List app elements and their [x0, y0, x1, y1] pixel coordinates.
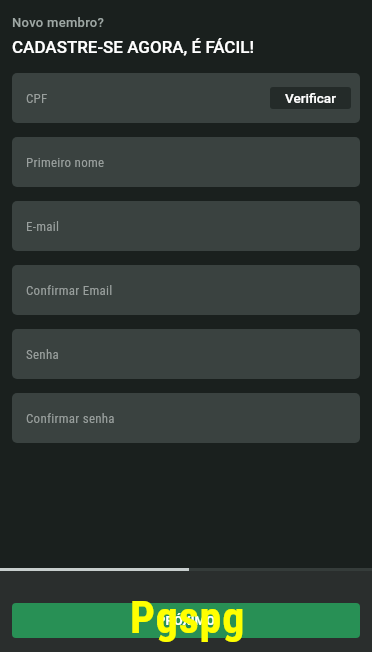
button[interactable]: Senha	[12, 329, 360, 379]
button[interactable]: CPF	[12, 73, 360, 123]
staticText: Pgspg	[130, 592, 246, 644]
staticText: Novo membro?	[12, 15, 105, 30]
staticText: Confirmar Email	[26, 283, 113, 298]
staticText: Verificar	[285, 90, 336, 106]
button[interactable]: Confirmar senha	[12, 393, 360, 443]
button[interactable]: Primeiro nome	[12, 137, 360, 187]
button[interactable]: Confirmar Email	[12, 265, 360, 315]
staticText: Confirmar senha	[26, 411, 115, 426]
button[interactable]: PRÓXIMO	[12, 603, 360, 638]
staticText: Senha	[26, 347, 59, 362]
staticText: Primeiro nome	[26, 155, 105, 170]
button[interactable]: E-mail	[12, 201, 360, 251]
staticText: CADASTRE-SE AGORA, É FÁCIL!	[12, 37, 254, 57]
staticText: E-mail	[26, 219, 60, 234]
staticText: PRÓXIMO	[157, 613, 215, 628]
button[interactable]: Verificar	[270, 87, 351, 109]
staticText: CPF	[26, 91, 48, 106]
